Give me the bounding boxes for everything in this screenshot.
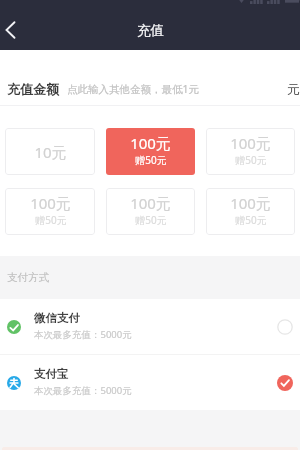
staticText: 100元 xyxy=(230,193,271,213)
staticText: 点此输入其他金额，最低1元 xyxy=(67,82,200,96)
staticText: 充值金额 xyxy=(7,81,59,97)
staticText: 充值 xyxy=(137,22,164,39)
staticText: 微信支付 xyxy=(34,311,80,325)
staticText: 10元 xyxy=(34,142,67,162)
button[interactable]: 充值金额 xyxy=(0,50,300,105)
staticText: 赠50元 xyxy=(135,213,167,227)
button[interactable]: 100元 xyxy=(206,188,295,235)
button[interactable]: 微信支付 xyxy=(0,299,300,354)
staticText: 支付宝 xyxy=(34,367,69,381)
staticText: 支付方式 xyxy=(7,271,49,284)
button[interactable]: 100元 xyxy=(206,128,295,175)
staticText: 赠50元 xyxy=(235,213,267,227)
button[interactable]: 100元 xyxy=(106,188,195,235)
button[interactable]: Back xyxy=(0,14,30,50)
staticText: 赠50元 xyxy=(235,153,267,167)
button[interactable]: 10元 xyxy=(5,128,95,175)
staticText: 100元 xyxy=(230,133,271,153)
staticText: 元 xyxy=(287,81,300,97)
staticText: 100元 xyxy=(130,133,171,153)
button[interactable]: 支付宝 xyxy=(0,355,300,410)
staticText: 本次最多充值：5000元 xyxy=(34,384,132,397)
button[interactable]: 100元 xyxy=(5,188,95,235)
staticText: 赠50元 xyxy=(35,213,67,227)
staticText: 100元 xyxy=(130,193,171,213)
staticText: 100元 xyxy=(30,193,71,213)
staticText: 本次最多充值：5000元 xyxy=(34,328,132,341)
button[interactable]: 100元 xyxy=(106,128,195,175)
staticText: 赠50元 xyxy=(135,153,167,167)
